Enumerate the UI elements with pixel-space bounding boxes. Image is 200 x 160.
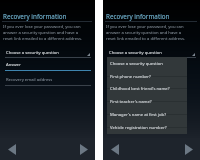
button[interactable]: Choose a security question	[0, 48, 95, 58]
button[interactable]: Answer	[0, 60, 95, 71]
staticText: First phone number?	[110, 74, 151, 80]
staticText: Choose a security question	[109, 50, 162, 56]
button[interactable]: First phone number?	[107, 70, 187, 83]
staticText: Recovery information	[106, 12, 170, 21]
staticText: Childhood best friend's name?	[110, 86, 170, 92]
button[interactable]: Back	[4, 141, 20, 157]
button[interactable]: Forward	[181, 141, 197, 157]
staticText: Recovery email address	[6, 77, 53, 83]
staticText: Recovery information	[3, 12, 67, 21]
button[interactable]: Manager's name at first job?	[107, 108, 187, 121]
button[interactable]: Vehicle registration number?	[107, 121, 187, 134]
button[interactable]: First teacher's name?	[107, 95, 187, 108]
staticText: Choose a security question	[110, 61, 163, 67]
button[interactable]: Choose a security question	[107, 57, 187, 70]
staticText: If you ever lose your password, you can …	[3, 24, 83, 42]
staticText: Choose a security question	[6, 50, 59, 56]
button[interactable]: Back	[107, 141, 123, 157]
staticText: Manager's name at first job?	[110, 112, 166, 118]
button[interactable]: Childhood best friend's name?	[107, 82, 187, 95]
staticText: Answer	[6, 62, 21, 68]
staticText: If you ever lose your password, you can …	[106, 24, 186, 42]
button[interactable]: Forward	[76, 141, 92, 157]
staticText: First teacher's name?	[110, 99, 152, 105]
staticText: Vehicle registration number?	[110, 125, 167, 131]
button[interactable]: Choose a security question	[103, 48, 200, 58]
button[interactable]: Recovery email address	[0, 75, 95, 86]
